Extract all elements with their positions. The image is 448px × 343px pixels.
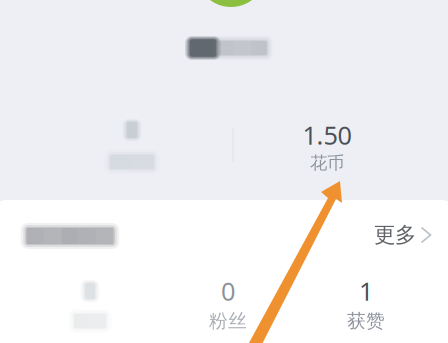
button[interactable]: 0 [168,274,288,342]
staticText: 获赞 [347,309,385,332]
staticText: 粉丝 [209,309,247,332]
button[interactable] [72,110,192,182]
staticText: 1 [359,274,373,308]
staticText: 花币 [310,152,344,174]
staticText: 更多 [374,222,416,248]
button[interactable] [30,274,150,342]
button[interactable]: 1.50 [262,115,392,187]
staticText: 0 [221,274,235,308]
button[interactable]: 更多 [359,210,448,260]
button[interactable]: 1 [306,274,426,342]
staticText: 1.50 [302,118,351,152]
